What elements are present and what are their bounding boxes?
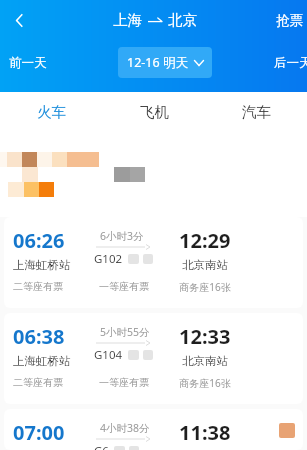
- staticText: 06:38: [13, 323, 65, 350]
- button[interactable]: 飞机: [103, 92, 205, 132]
- staticText: G6: [94, 443, 109, 450]
- staticText: 飞机: [140, 103, 169, 121]
- staticText: 12:33: [179, 323, 231, 350]
- staticText: 11:38: [179, 419, 231, 446]
- button[interactable]: 12-16 明天: [118, 47, 212, 78]
- staticText: 汽车: [242, 103, 271, 121]
- staticText: 商务座16张: [151, 376, 259, 390]
- staticText: 一等座有票: [99, 376, 149, 389]
- button[interactable]: 抢票: [268, 6, 307, 35]
- staticText: G104: [94, 347, 123, 363]
- staticText: 抢票: [276, 12, 303, 29]
- button[interactable]: 火车: [0, 92, 103, 132]
- button[interactable]: 后一天: [266, 50, 307, 76]
- staticText: 07:00: [13, 419, 65, 446]
- staticText: 二等座有票: [13, 280, 63, 293]
- staticText: 6小时3分: [100, 229, 144, 243]
- staticText: 一等座有票: [99, 280, 149, 293]
- button[interactable]: Back: [0, 1, 38, 39]
- staticText: 北京南站: [182, 258, 228, 272]
- staticText: 12:29: [179, 227, 231, 254]
- button[interactable]: 汽车: [205, 92, 307, 132]
- staticText: 4小时38分: [100, 421, 150, 435]
- staticText: G102: [94, 251, 123, 267]
- staticText: 后一天: [274, 55, 307, 71]
- staticText: 二等座有票: [13, 376, 63, 389]
- staticText: 上海虹桥站: [13, 354, 71, 368]
- staticText: 上海虹桥站: [13, 258, 71, 272]
- button[interactable]: Back to top: [279, 423, 295, 438]
- button[interactable]: 06:26: [4, 217, 303, 308]
- button[interactable]: 前一天: [1, 50, 55, 76]
- staticText: 12-16 明天: [127, 54, 188, 71]
- staticText: 北京南站: [182, 354, 228, 368]
- button[interactable]: 07:00: [4, 409, 303, 450]
- staticText: 5小时55分: [100, 325, 150, 339]
- staticText: 北京: [168, 11, 197, 29]
- staticText: 前一天: [9, 55, 47, 71]
- staticText: 06:26: [13, 227, 65, 254]
- staticText: 火车: [37, 103, 66, 121]
- button[interactable]: 06:38: [4, 313, 303, 404]
- staticText: 商务座16张: [151, 280, 259, 294]
- staticText: 上海: [113, 11, 142, 29]
